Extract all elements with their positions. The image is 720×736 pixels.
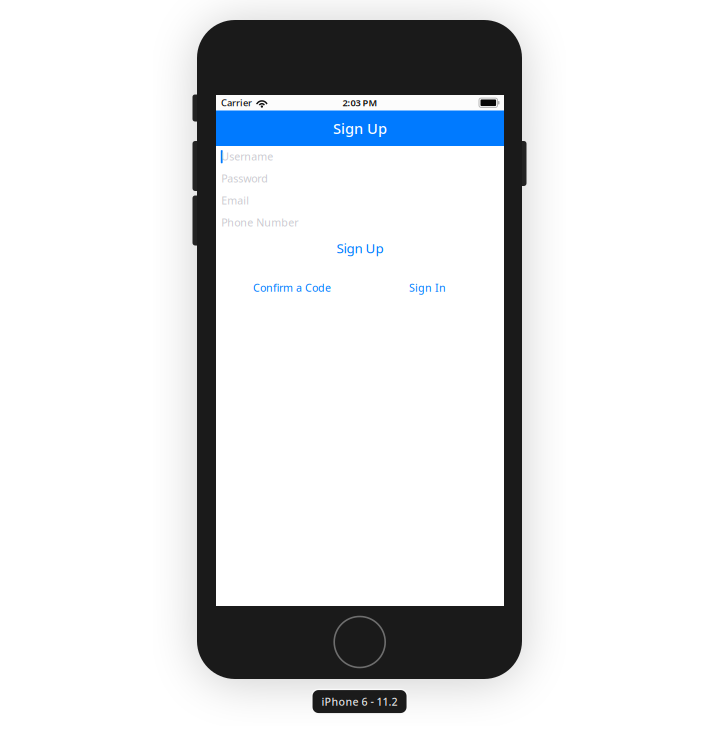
staticText: Sign In: [409, 280, 446, 295]
button[interactable]: Confirm a Code: [247, 277, 337, 297]
button[interactable]: Username: [216, 146, 504, 168]
button[interactable]: Phone Number: [216, 212, 504, 234]
staticText: Phone Number: [221, 215, 298, 229]
staticText: Username: [221, 149, 273, 163]
staticText: Email: [221, 193, 249, 207]
staticText: Password: [221, 171, 268, 185]
staticText: Carrier: [221, 97, 252, 109]
staticText: Confirm a Code: [253, 280, 331, 295]
button[interactable]: Email: [216, 190, 504, 212]
button[interactable]: Sign In: [399, 277, 455, 297]
staticText: Sign Up: [336, 239, 383, 257]
staticText: 2:03 PM: [342, 97, 377, 109]
staticText: iPhone 6 - 11.2: [322, 694, 398, 709]
button[interactable]: Password: [216, 168, 504, 190]
staticText: Sign Up: [333, 118, 387, 138]
button[interactable]: Sign Up: [216, 237, 504, 259]
